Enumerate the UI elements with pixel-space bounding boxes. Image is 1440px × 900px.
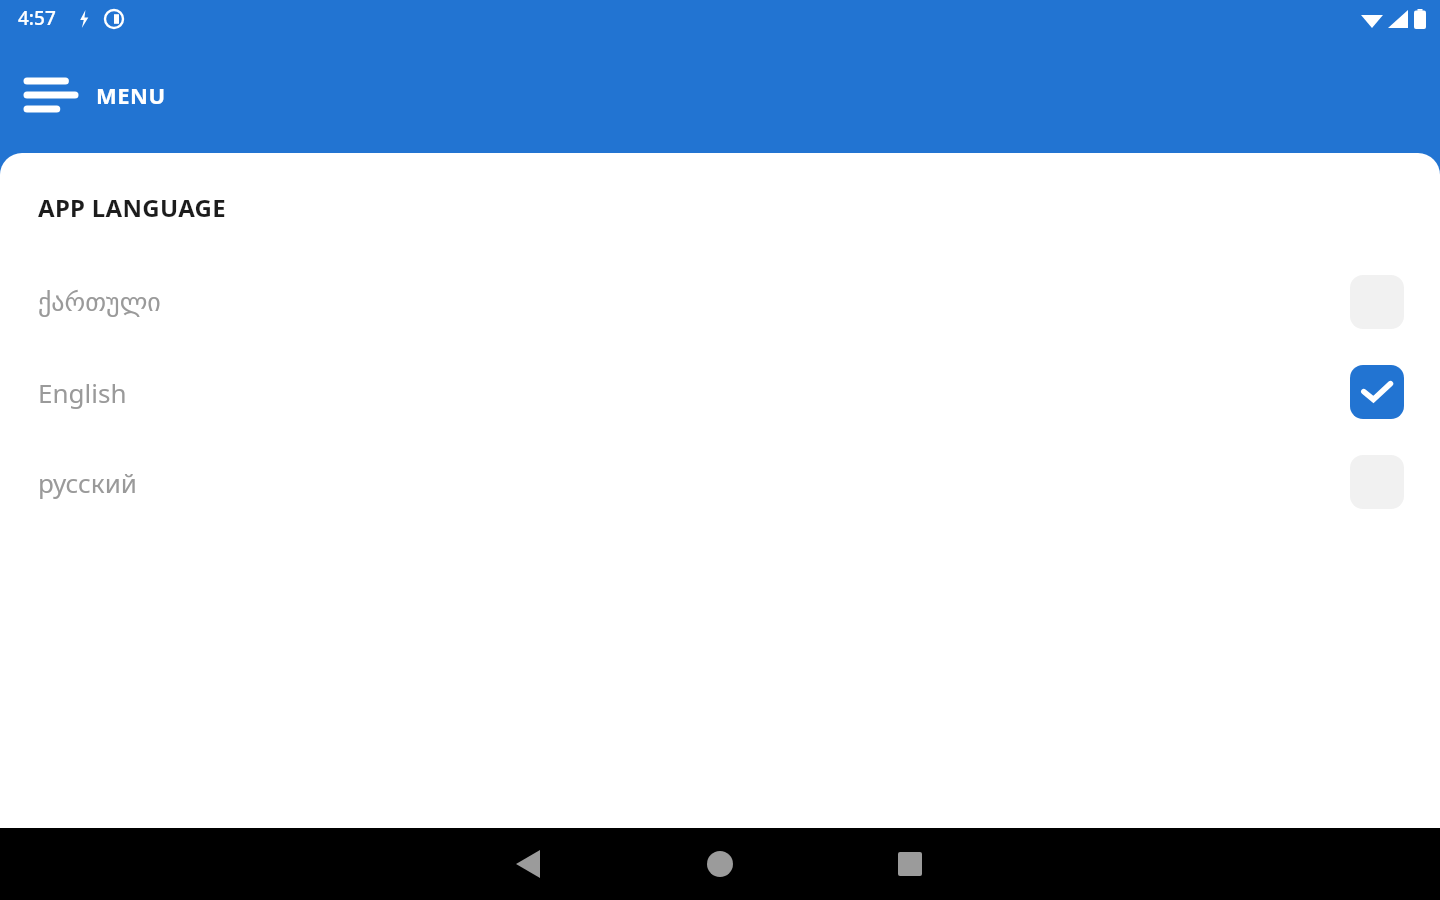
button[interactable]: русский xyxy=(0,437,1440,527)
staticText: русский xyxy=(38,465,1350,500)
button[interactable]: Recent apps xyxy=(872,828,948,900)
button[interactable]: English xyxy=(0,347,1440,437)
staticText: ქართული xyxy=(38,287,1350,317)
button[interactable]: Open navigation menu xyxy=(0,38,1440,152)
button[interactable]: Back xyxy=(490,828,566,900)
staticText: MENU xyxy=(96,80,166,110)
staticText: APP LANGUAGE xyxy=(38,191,227,224)
button[interactable]: Home xyxy=(682,828,758,900)
button[interactable]: Open navigation menu xyxy=(22,66,80,124)
button[interactable]: ქართული xyxy=(0,257,1440,347)
staticText: English xyxy=(38,375,1350,410)
staticText: 4:57 xyxy=(18,5,56,31)
